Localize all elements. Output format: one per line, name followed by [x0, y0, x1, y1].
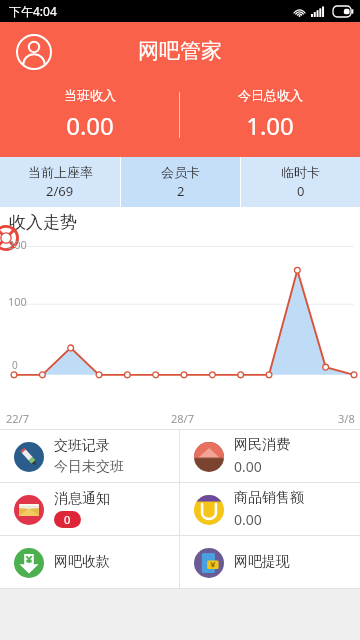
staticText: 200 [8, 237, 27, 252]
staticText: 2/69 [46, 182, 74, 200]
staticText: 0.00 [234, 510, 262, 529]
button[interactable]: 当前上座率 [0, 157, 120, 207]
staticText: 1.00 [246, 109, 294, 142]
other: Withdraw [194, 548, 224, 578]
staticText: 消息通知 [54, 490, 110, 508]
button[interactable]: Account [13, 31, 55, 73]
staticText: 网吧提现 [234, 553, 290, 571]
staticText: 会员卡 [161, 164, 200, 180]
button[interactable]: 会员卡 [121, 157, 240, 207]
staticText: 0.00 [66, 109, 114, 142]
other: Product sales [194, 495, 224, 525]
staticText: 100 [8, 294, 27, 309]
staticText: 网吧管家 [138, 38, 222, 64]
staticText: 28/7 [171, 411, 194, 426]
button[interactable]: Product sales [180, 483, 360, 535]
other: Collect payment [14, 548, 44, 578]
staticText: 临时卡 [281, 164, 320, 180]
staticText: 0 [297, 182, 305, 200]
button[interactable]: Shift records [0, 430, 179, 482]
staticText: 2 [177, 182, 185, 200]
staticText: 当前上座率 [28, 164, 93, 180]
staticText: 今日总收入 [238, 87, 303, 103]
staticText: 商品销售额 [234, 489, 304, 507]
staticText: 22/7 [6, 411, 29, 426]
button[interactable]: 临时卡 [241, 157, 360, 207]
other: Shift records [14, 442, 44, 472]
other: Customer spending [194, 442, 224, 472]
staticText: 0 [12, 358, 18, 372]
staticText: 网民消费 [234, 436, 290, 454]
staticText: 当班收入 [64, 87, 116, 103]
staticText: 交班记录 [54, 437, 110, 455]
staticText: 网吧收款 [54, 553, 110, 571]
button[interactable]: Notifications [0, 483, 179, 535]
other: Notifications [14, 495, 44, 525]
staticText: 3/8 [338, 411, 355, 426]
button[interactable]: Collect payment [0, 536, 179, 588]
staticText: 收入走势 [9, 212, 77, 233]
staticText: 0.00 [234, 457, 262, 476]
button[interactable]: Customer spending [180, 430, 360, 482]
staticText: 今日未交班 [54, 458, 124, 476]
staticText: 下午4:04 [9, 3, 57, 19]
staticText: 0 [64, 512, 71, 527]
button[interactable]: Withdraw [180, 536, 360, 588]
